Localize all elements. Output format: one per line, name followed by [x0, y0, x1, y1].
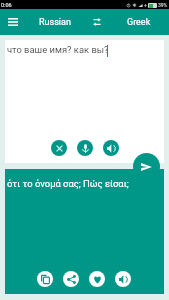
button[interactable]: Add to favourites [89, 271, 105, 287]
staticText: 0:06 [1, 2, 12, 8]
staticText: ότι το όνομά σας; Πώς είσαι; [7, 178, 129, 189]
staticText: + [144, 2, 147, 8]
button[interactable]: Share [63, 271, 79, 287]
staticText: 39% [158, 2, 168, 8]
button[interactable]: Listen to translation [115, 271, 131, 287]
button[interactable]: Clear text [51, 140, 67, 156]
staticText: Russian [39, 17, 71, 28]
button[interactable]: Greek [109, 9, 169, 35]
button[interactable]: Listen to source [103, 140, 119, 156]
button[interactable]: Swap languages [85, 10, 109, 34]
staticText: что ваше имя? как вы? [7, 44, 109, 55]
button[interactable]: Russian [25, 9, 85, 35]
button[interactable]: Navigation menu [1, 10, 25, 34]
staticText: Greek [127, 17, 151, 28]
button[interactable]: Copy translation [37, 271, 53, 287]
button[interactable]: Translate [133, 153, 160, 180]
button[interactable]: Voice input [77, 140, 93, 156]
